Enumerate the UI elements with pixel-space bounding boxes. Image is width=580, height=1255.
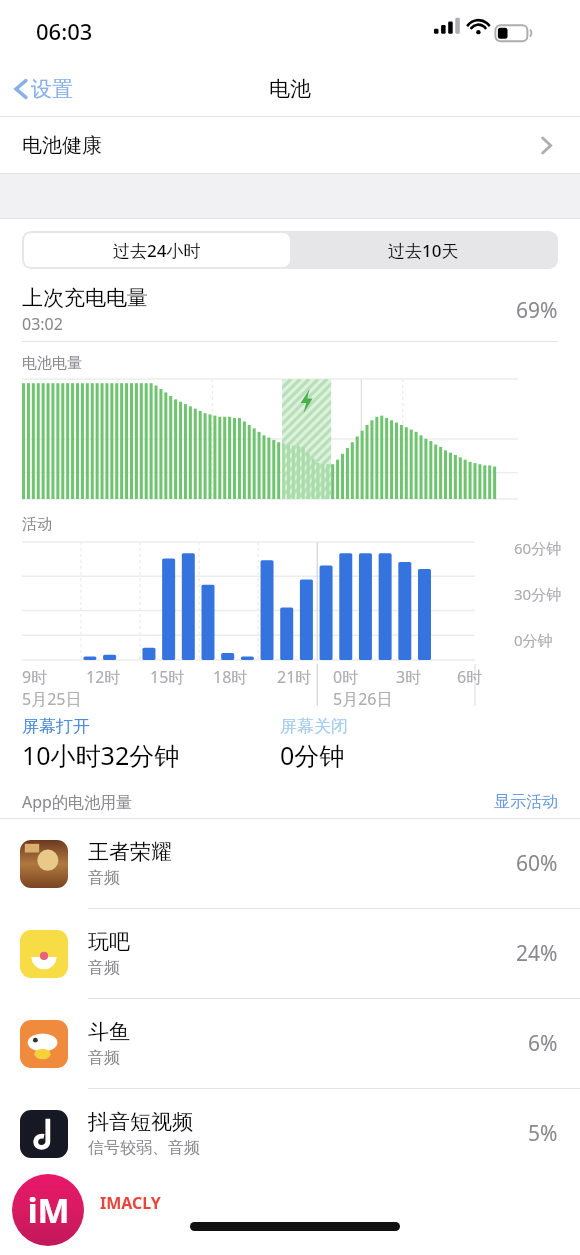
staticText: 5月25日 <box>22 688 82 710</box>
staticText: 6时 <box>457 666 483 688</box>
staticText: 音频 <box>88 1048 120 1068</box>
staticText: 屏幕打开 <box>22 716 90 737</box>
staticText: 玩吧 <box>88 929 130 955</box>
staticText: 上次充电电量 <box>22 285 148 311</box>
staticText: 9时 <box>22 666 48 688</box>
staticText: 5% <box>528 1119 558 1148</box>
staticText: 21时 <box>277 666 312 688</box>
staticText: 60% <box>516 849 558 878</box>
button[interactable]: 电池健康 <box>0 117 580 173</box>
staticText: 06:03 <box>36 16 93 46</box>
staticText: 18时 <box>213 666 248 688</box>
staticText: 6% <box>528 1029 558 1058</box>
staticText: 设置 <box>31 76 73 102</box>
staticText: 显示活动 <box>494 792 558 812</box>
button[interactable]: 玩吧 <box>0 909 580 998</box>
staticText: 03:02 <box>22 313 63 335</box>
staticText: 12时 <box>86 666 121 688</box>
staticText: 抖音短视频 <box>88 1109 193 1135</box>
staticText: 音频 <box>88 958 120 978</box>
staticText: 过去24小时 <box>113 239 201 262</box>
staticText: 过去10天 <box>388 239 459 262</box>
staticText: 电池健康 <box>22 133 102 158</box>
staticText: 斗鱼 <box>88 1019 130 1045</box>
staticText: 0分钟 <box>280 738 345 772</box>
button[interactable]: 过去10天 <box>290 233 556 267</box>
staticText: 24% <box>516 939 558 968</box>
staticText: 0分钟 <box>514 630 553 650</box>
staticText: 0时 <box>333 666 359 688</box>
button[interactable]: 过去24小时 <box>24 233 290 267</box>
button[interactable]: 斗鱼 <box>0 999 580 1088</box>
staticText: IMACLY <box>100 1192 161 1214</box>
staticText: 30分钟 <box>514 584 562 604</box>
staticText: 音频 <box>88 868 120 888</box>
staticText: 60分钟 <box>514 538 562 558</box>
staticText: 信号较弱、音频 <box>88 1138 200 1158</box>
staticText: 电池电量 <box>22 354 82 373</box>
button[interactable]: 显示活动 <box>472 788 580 816</box>
staticText: 屏幕关闭 <box>280 716 348 737</box>
staticText: 15时 <box>150 666 185 688</box>
staticText: 王者荣耀 <box>88 839 172 865</box>
staticText: App的电池用量 <box>22 791 132 813</box>
staticText: 3时 <box>396 666 422 688</box>
staticText: 69% <box>516 296 558 325</box>
staticText: 10小时32分钟 <box>22 738 180 772</box>
button[interactable]: 王者荣耀 <box>0 819 580 908</box>
button[interactable]: 设置 <box>0 70 85 108</box>
staticText: 活动 <box>22 515 52 534</box>
staticText: 5月26日 <box>333 688 393 710</box>
staticText: iM <box>27 1187 70 1233</box>
button[interactable]: 抖音短视频 <box>0 1089 580 1178</box>
staticText: 电池 <box>269 76 311 102</box>
